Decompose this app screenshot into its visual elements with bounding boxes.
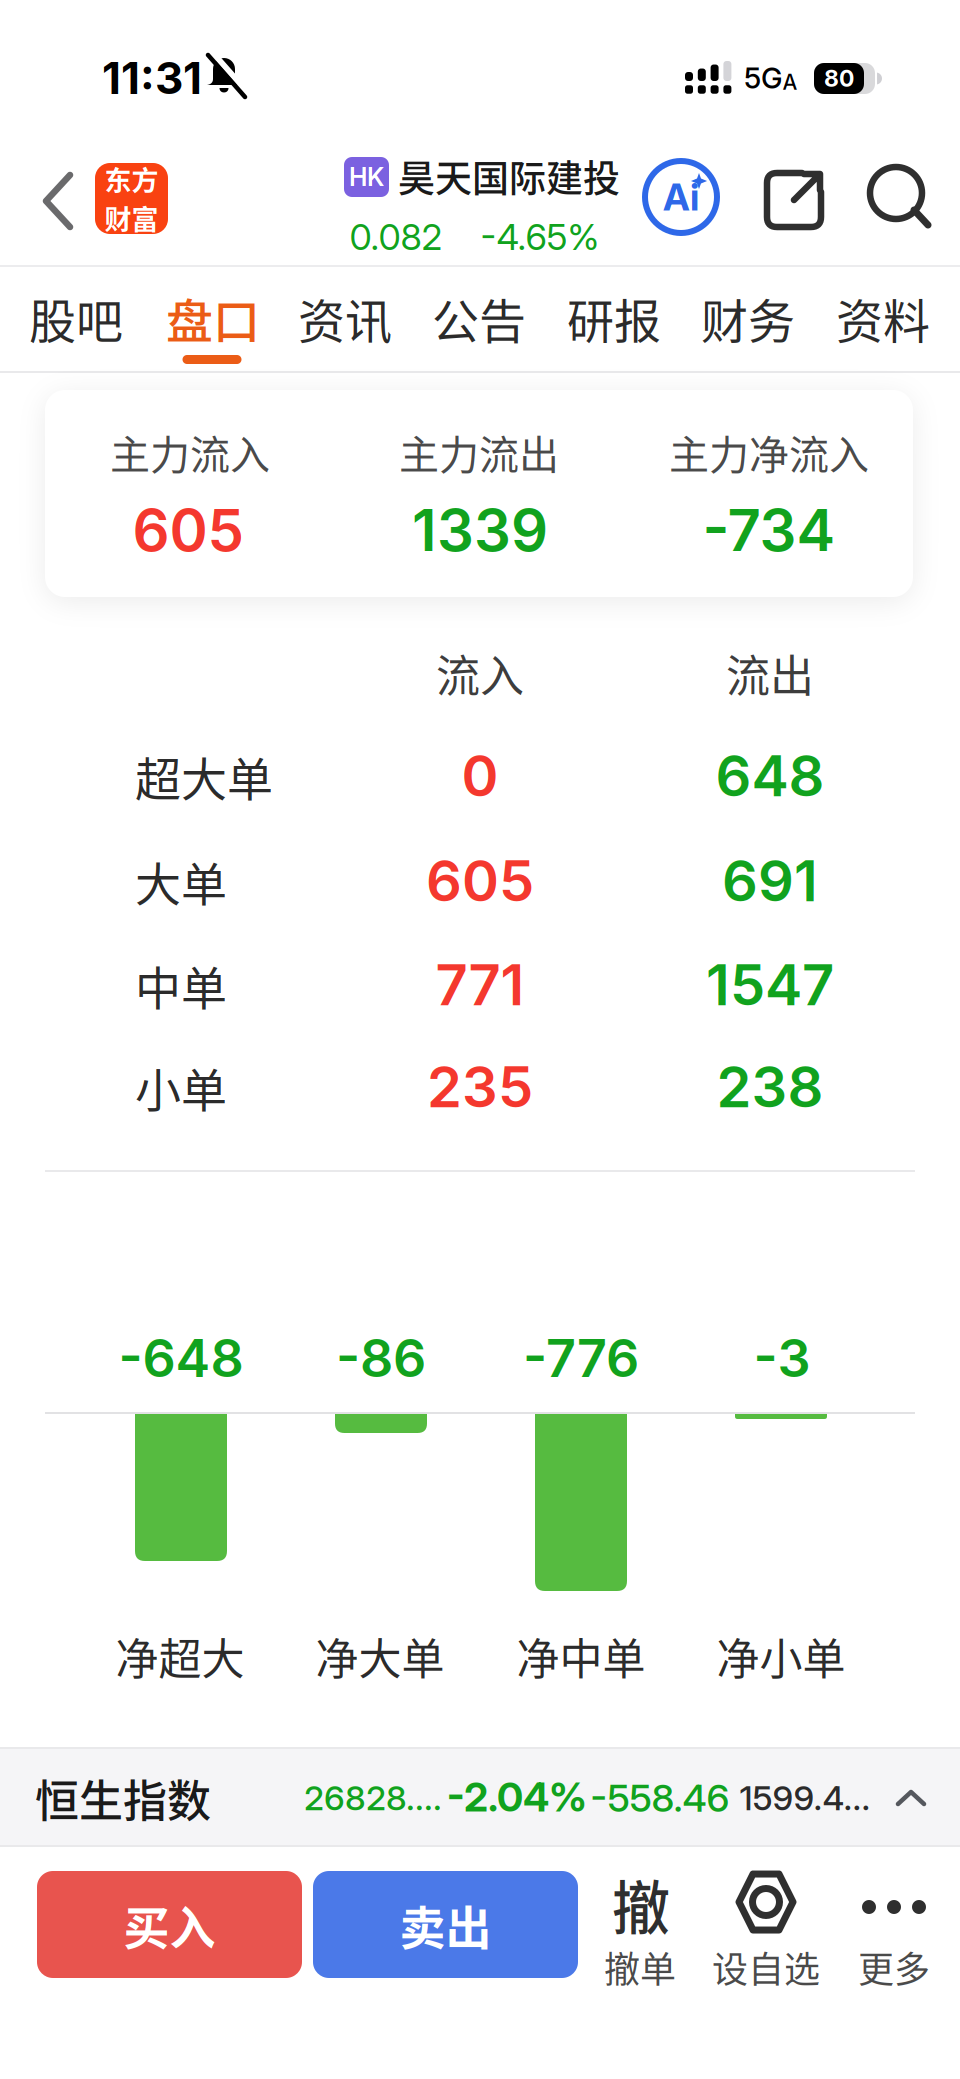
staticText: 买入 — [123, 1891, 215, 1958]
staticText: 235 — [427, 1053, 533, 1121]
staticText: HK — [349, 162, 384, 192]
staticText: 691 — [722, 847, 818, 915]
staticText: 648 — [715, 742, 824, 810]
staticText: 财富 — [104, 198, 158, 238]
button[interactable]: 搜索 — [866, 165, 932, 231]
staticText: Ai — [663, 175, 699, 219]
staticText: -648 — [118, 1326, 243, 1389]
staticText: 主力流出 — [399, 423, 559, 481]
staticText: 昊天国际建投 — [398, 149, 620, 203]
staticText: 流出 — [726, 641, 814, 705]
staticText: -2.04% — [447, 1773, 587, 1821]
button[interactable]: 盘口 — [166, 284, 260, 352]
button[interactable]: 东方财富 — [95, 163, 168, 234]
staticText: -734 — [702, 495, 835, 565]
button[interactable]: 设自选 — [713, 1869, 823, 1981]
staticText: 605 — [426, 847, 534, 915]
staticText: 80 — [824, 65, 854, 92]
staticText: 恒生指数 — [35, 1766, 211, 1830]
staticText: 撤 — [612, 1862, 670, 1946]
staticText: 0 — [461, 742, 498, 810]
staticText: A — [782, 69, 797, 95]
staticText: -3 — [753, 1326, 810, 1389]
staticText: 11:31 — [102, 51, 202, 105]
staticText: 财务 — [701, 284, 795, 352]
button[interactable]: 卖出 — [313, 1871, 578, 1978]
staticText: 26828.... — [304, 1777, 442, 1818]
staticText: 研报 — [567, 284, 661, 352]
staticText: 771 — [435, 951, 524, 1019]
staticText: 主力流入 — [110, 423, 270, 481]
button[interactable]: 更多 — [844, 1869, 944, 1981]
staticText: 超大单 — [135, 743, 273, 809]
staticText: 主力净流入 — [669, 423, 869, 481]
staticText: -558.46 — [590, 1775, 729, 1821]
button[interactable]: 股吧 — [29, 284, 123, 352]
staticText: 流入 — [436, 641, 524, 705]
button[interactable]: 财务 — [701, 284, 795, 352]
staticText: 撤单 — [604, 1941, 676, 1993]
staticText: 资讯 — [298, 284, 392, 352]
staticText: 净大单 — [315, 1625, 444, 1687]
button[interactable]: 公告 — [432, 284, 526, 352]
staticText: 大单 — [135, 848, 227, 914]
staticText: 中单 — [135, 952, 227, 1018]
button[interactable]: 返回 — [38, 171, 78, 231]
staticText: 小单 — [135, 1054, 227, 1120]
button[interactable]: 资讯 — [298, 284, 392, 352]
staticText: 盘口 — [166, 284, 260, 352]
button[interactable]: 买入 — [37, 1871, 302, 1978]
staticText: -4.65% — [480, 215, 599, 259]
staticText: 设自选 — [712, 1941, 820, 1993]
staticText: 净中单 — [516, 1625, 645, 1687]
staticText: -776 — [523, 1326, 639, 1389]
staticText: 0.082 — [349, 215, 442, 259]
staticText: 605 — [132, 495, 243, 565]
staticText: 238 — [716, 1053, 823, 1121]
staticText: 5G — [744, 60, 782, 96]
button[interactable]: 撤单 — [590, 1869, 690, 1981]
staticText: 1599.4... — [739, 1777, 870, 1818]
staticText: 股吧 — [29, 284, 123, 352]
staticText: 净超大 — [115, 1625, 244, 1687]
staticText: 资料 — [836, 284, 930, 352]
staticText: 1339 — [412, 495, 548, 565]
button[interactable]: Ai助手 — [642, 158, 720, 236]
staticText: 公告 — [432, 284, 526, 352]
staticText: 1547 — [706, 951, 834, 1019]
button[interactable]: 研报 — [567, 284, 661, 352]
button[interactable]: 资料 — [836, 284, 930, 352]
staticText: 更多 — [858, 1941, 930, 1993]
button[interactable]: 恒生指数 收起 — [0, 1747, 960, 1847]
staticText: 卖出 — [399, 1891, 491, 1958]
staticText: -86 — [336, 1326, 426, 1389]
staticText: 东方 — [104, 159, 158, 198]
staticText: 净小单 — [716, 1625, 845, 1687]
button[interactable]: 分享 — [762, 168, 826, 232]
